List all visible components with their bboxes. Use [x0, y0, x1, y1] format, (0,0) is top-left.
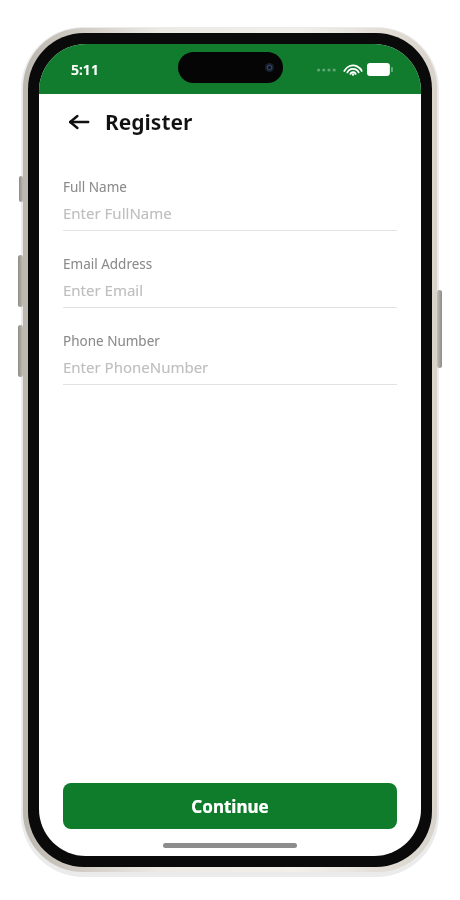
staticText: Register — [105, 108, 193, 137]
staticText: Enter Email — [63, 280, 144, 300]
staticText: Enter FullName — [63, 203, 172, 223]
staticText: Enter PhoneNumber — [63, 357, 209, 377]
staticText: Email Address — [63, 255, 153, 273]
staticText: Phone Number — [63, 332, 160, 350]
button[interactable]: Email Address — [63, 255, 397, 308]
button[interactable]: Full Name — [63, 178, 397, 231]
staticText: Continue — [191, 795, 269, 818]
button[interactable]: Continue — [63, 783, 397, 829]
button[interactable]: Back — [63, 106, 95, 138]
button[interactable]: Phone Number — [63, 332, 397, 385]
staticText: 5:11 — [71, 60, 99, 79]
staticText: Full Name — [63, 178, 127, 196]
